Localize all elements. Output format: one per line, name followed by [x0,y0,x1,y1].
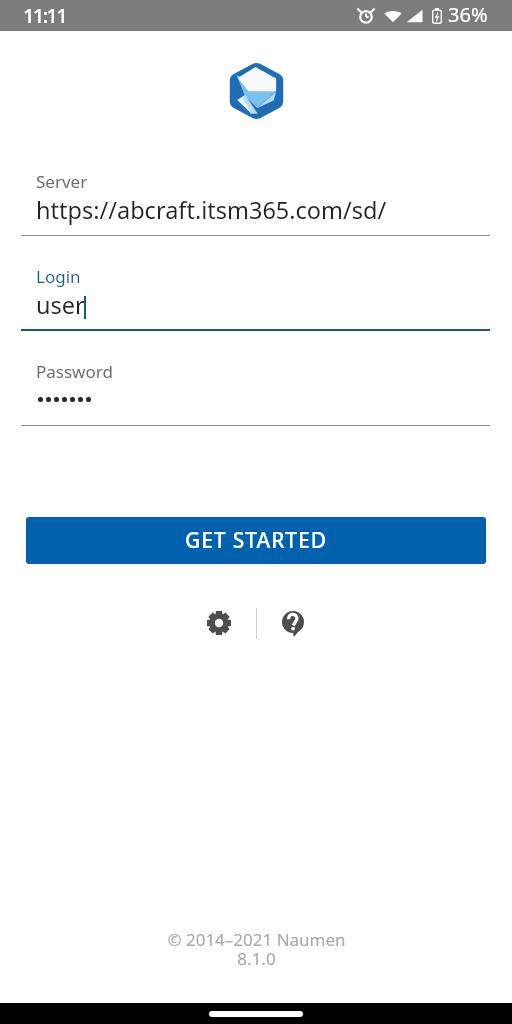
staticText: Password [36,360,113,383]
button[interactable]: Password [21,354,490,426]
staticText: 36% [448,1,488,28]
staticText: 11:11 [23,1,66,29]
button[interactable]: GET STARTED [26,517,486,564]
staticText: Server [36,170,88,193]
button[interactable]: Login [21,259,490,331]
button[interactable]: Server [21,164,490,236]
staticText: Login [36,265,81,288]
button[interactable]: Settings [181,599,256,647]
button[interactable]: Help [257,599,332,647]
staticText: https://abcraft.itsm365.com/sd/ [36,194,387,226]
staticText: user [36,289,85,321]
staticText: GET STARTED [185,526,327,555]
staticText: © 2014–2021 Naumen [167,928,346,951]
staticText: 8.1.0 [237,947,276,970]
